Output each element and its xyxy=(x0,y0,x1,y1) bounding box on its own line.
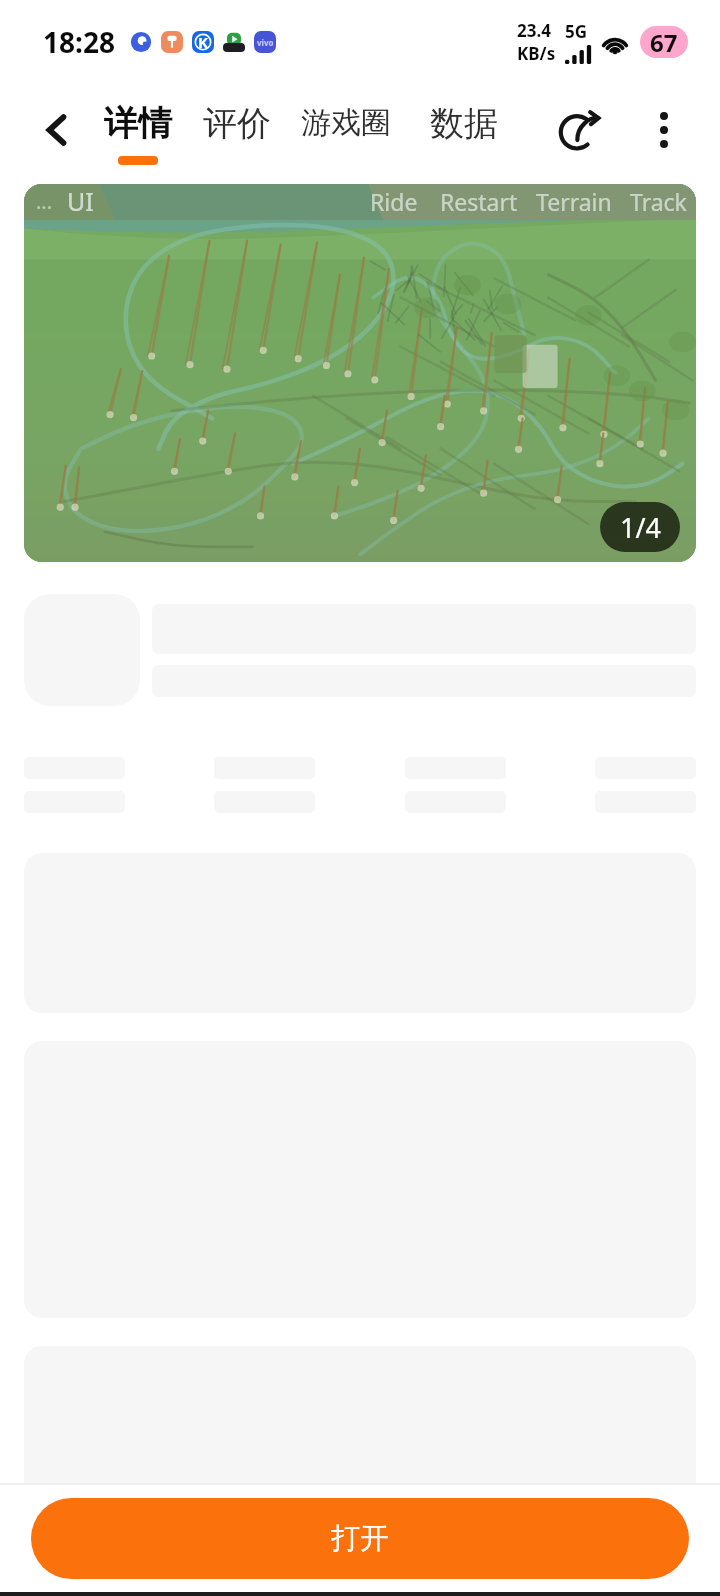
staticText: 评价 xyxy=(203,102,271,145)
staticText: Terrain xyxy=(536,186,612,217)
staticText: Restart xyxy=(440,186,518,217)
staticText: 18:28 xyxy=(43,23,115,61)
staticText: UI xyxy=(67,184,94,218)
button[interactable]: 游戏圈 xyxy=(301,84,391,176)
staticText: 23.4 xyxy=(517,19,551,42)
staticText: 67 xyxy=(650,26,678,58)
staticText: 详情 xyxy=(104,102,172,145)
staticText: 数据 xyxy=(430,102,498,145)
staticText: 1/4 xyxy=(620,509,661,546)
button[interactable]: 详情 xyxy=(104,84,172,176)
button[interactable]: Back xyxy=(0,84,104,176)
staticText: 游戏圈 xyxy=(301,104,391,142)
staticText: K xyxy=(198,32,208,52)
staticText: KB/s xyxy=(517,42,556,65)
staticText: vivo xyxy=(257,37,274,48)
button[interactable]: More options xyxy=(620,84,708,176)
staticText: 5G xyxy=(565,20,588,43)
staticText: 打开 xyxy=(331,1520,389,1557)
staticText: Ride xyxy=(370,186,418,217)
button[interactable]: ... xyxy=(24,184,696,562)
button[interactable]: 1/4 xyxy=(600,502,680,552)
button[interactable]: Share xyxy=(538,84,620,176)
staticText: ... xyxy=(36,188,53,215)
button[interactable]: 数据 xyxy=(430,84,498,176)
staticText: Track xyxy=(630,186,687,217)
button[interactable]: 评价 xyxy=(203,84,271,176)
button[interactable]: 打开 xyxy=(31,1498,689,1579)
